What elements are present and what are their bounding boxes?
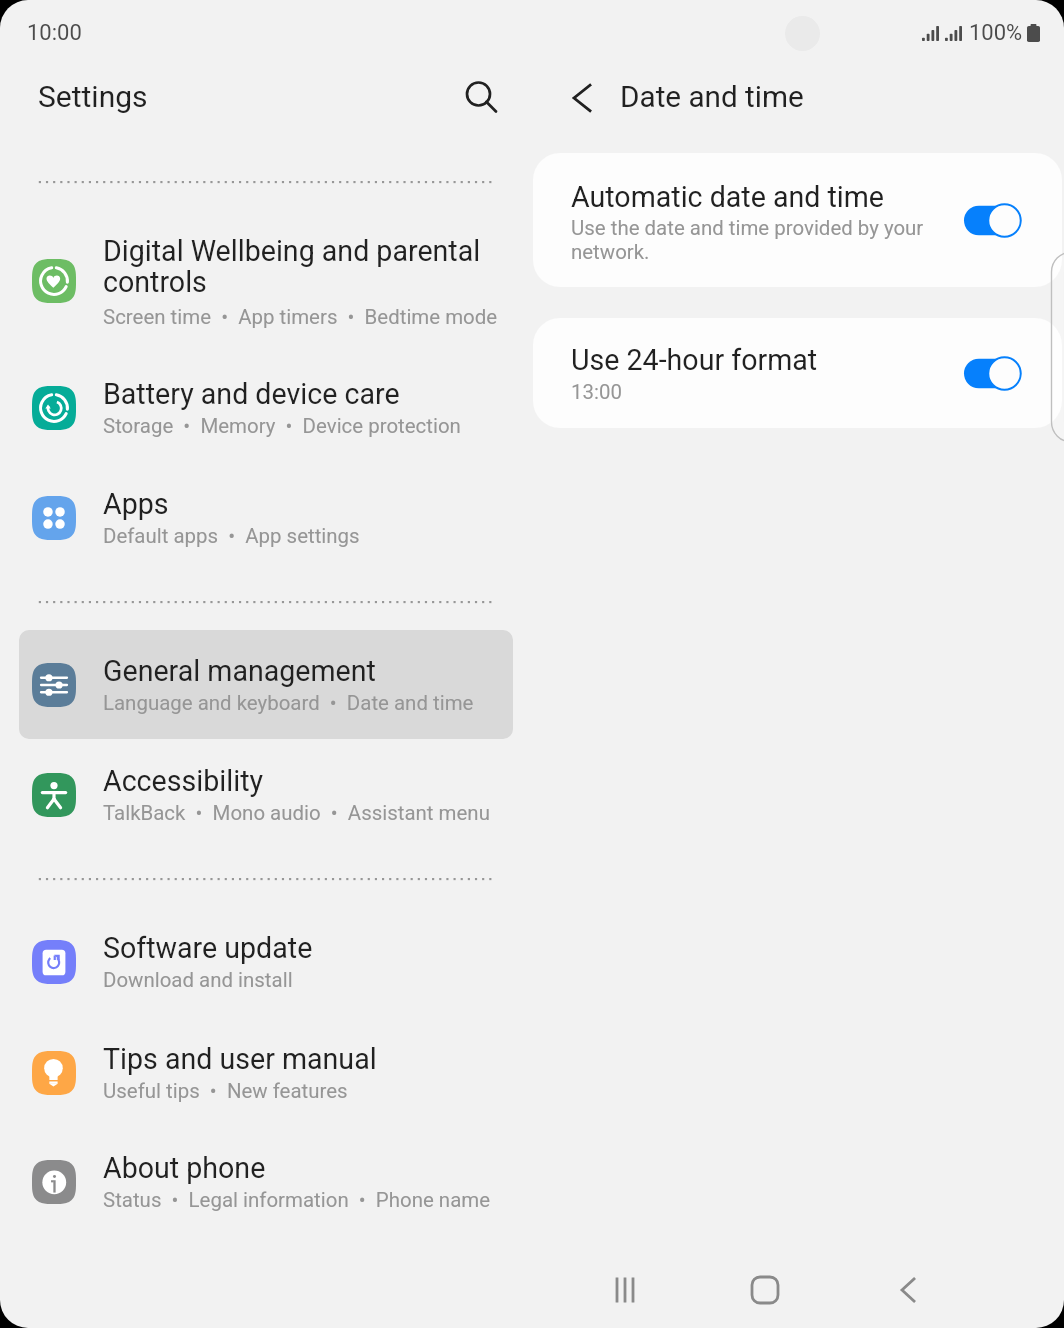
staticText: General management [103,654,376,688]
button[interactable]: Toggle [964,356,1022,391]
button[interactable]: Accessibility [19,740,513,849]
staticText: Date and time [620,79,804,114]
staticText: Screen time • App timers • Bedtime mode [103,305,498,329]
staticText: Battery and device care [103,377,400,411]
staticText: Software update [103,931,313,965]
button[interactable]: Toggle [964,203,1022,238]
button[interactable]: Back [880,1262,936,1318]
staticText: 10:00 [27,20,82,46]
staticText: Digital Wellbeing and parental controls [103,234,481,299]
button[interactable]: Search [456,72,501,117]
staticText: Use the date and time provided by your n… [571,216,924,264]
button[interactable]: Battery and device care [19,353,513,462]
staticText: Apps [103,487,169,521]
button[interactable]: Software update [19,907,513,1016]
staticText: Storage • Memory • Device protection [103,414,461,438]
staticText: Language and keyboard • Date and time [103,691,474,715]
staticText: Download and install [103,968,293,992]
button[interactable]: About phone [19,1127,513,1236]
staticText: Default apps • App settings [103,524,360,548]
button[interactable]: Recents [597,1262,653,1318]
staticText: About phone [103,1151,266,1185]
button[interactable]: Tips and user manual [19,1018,513,1127]
staticText: 13:00 [571,380,622,404]
staticText: TalkBack • Mono audio • Assistant menu [103,801,490,825]
staticText: Accessibility [103,764,264,798]
staticText: 100% [969,20,1023,46]
staticText: Useful tips • New features [103,1079,348,1103]
button[interactable]: Digital Wellbeing and parental controls [19,226,513,335]
button[interactable]: Apps [19,463,513,572]
staticText: Settings [38,79,148,114]
button[interactable]: Back [559,77,601,119]
button[interactable]: Automatic date and time [533,153,1062,287]
button[interactable]: Use 24-hour format [533,318,1062,428]
button[interactable]: General management [19,630,513,739]
staticText: Use 24-hour format [571,343,818,377]
staticText: Tips and user manual [103,1042,377,1076]
button[interactable]: Home [737,1262,793,1318]
staticText: Automatic date and time [571,180,885,214]
staticText: Status • Legal information • Phone name [103,1188,491,1212]
